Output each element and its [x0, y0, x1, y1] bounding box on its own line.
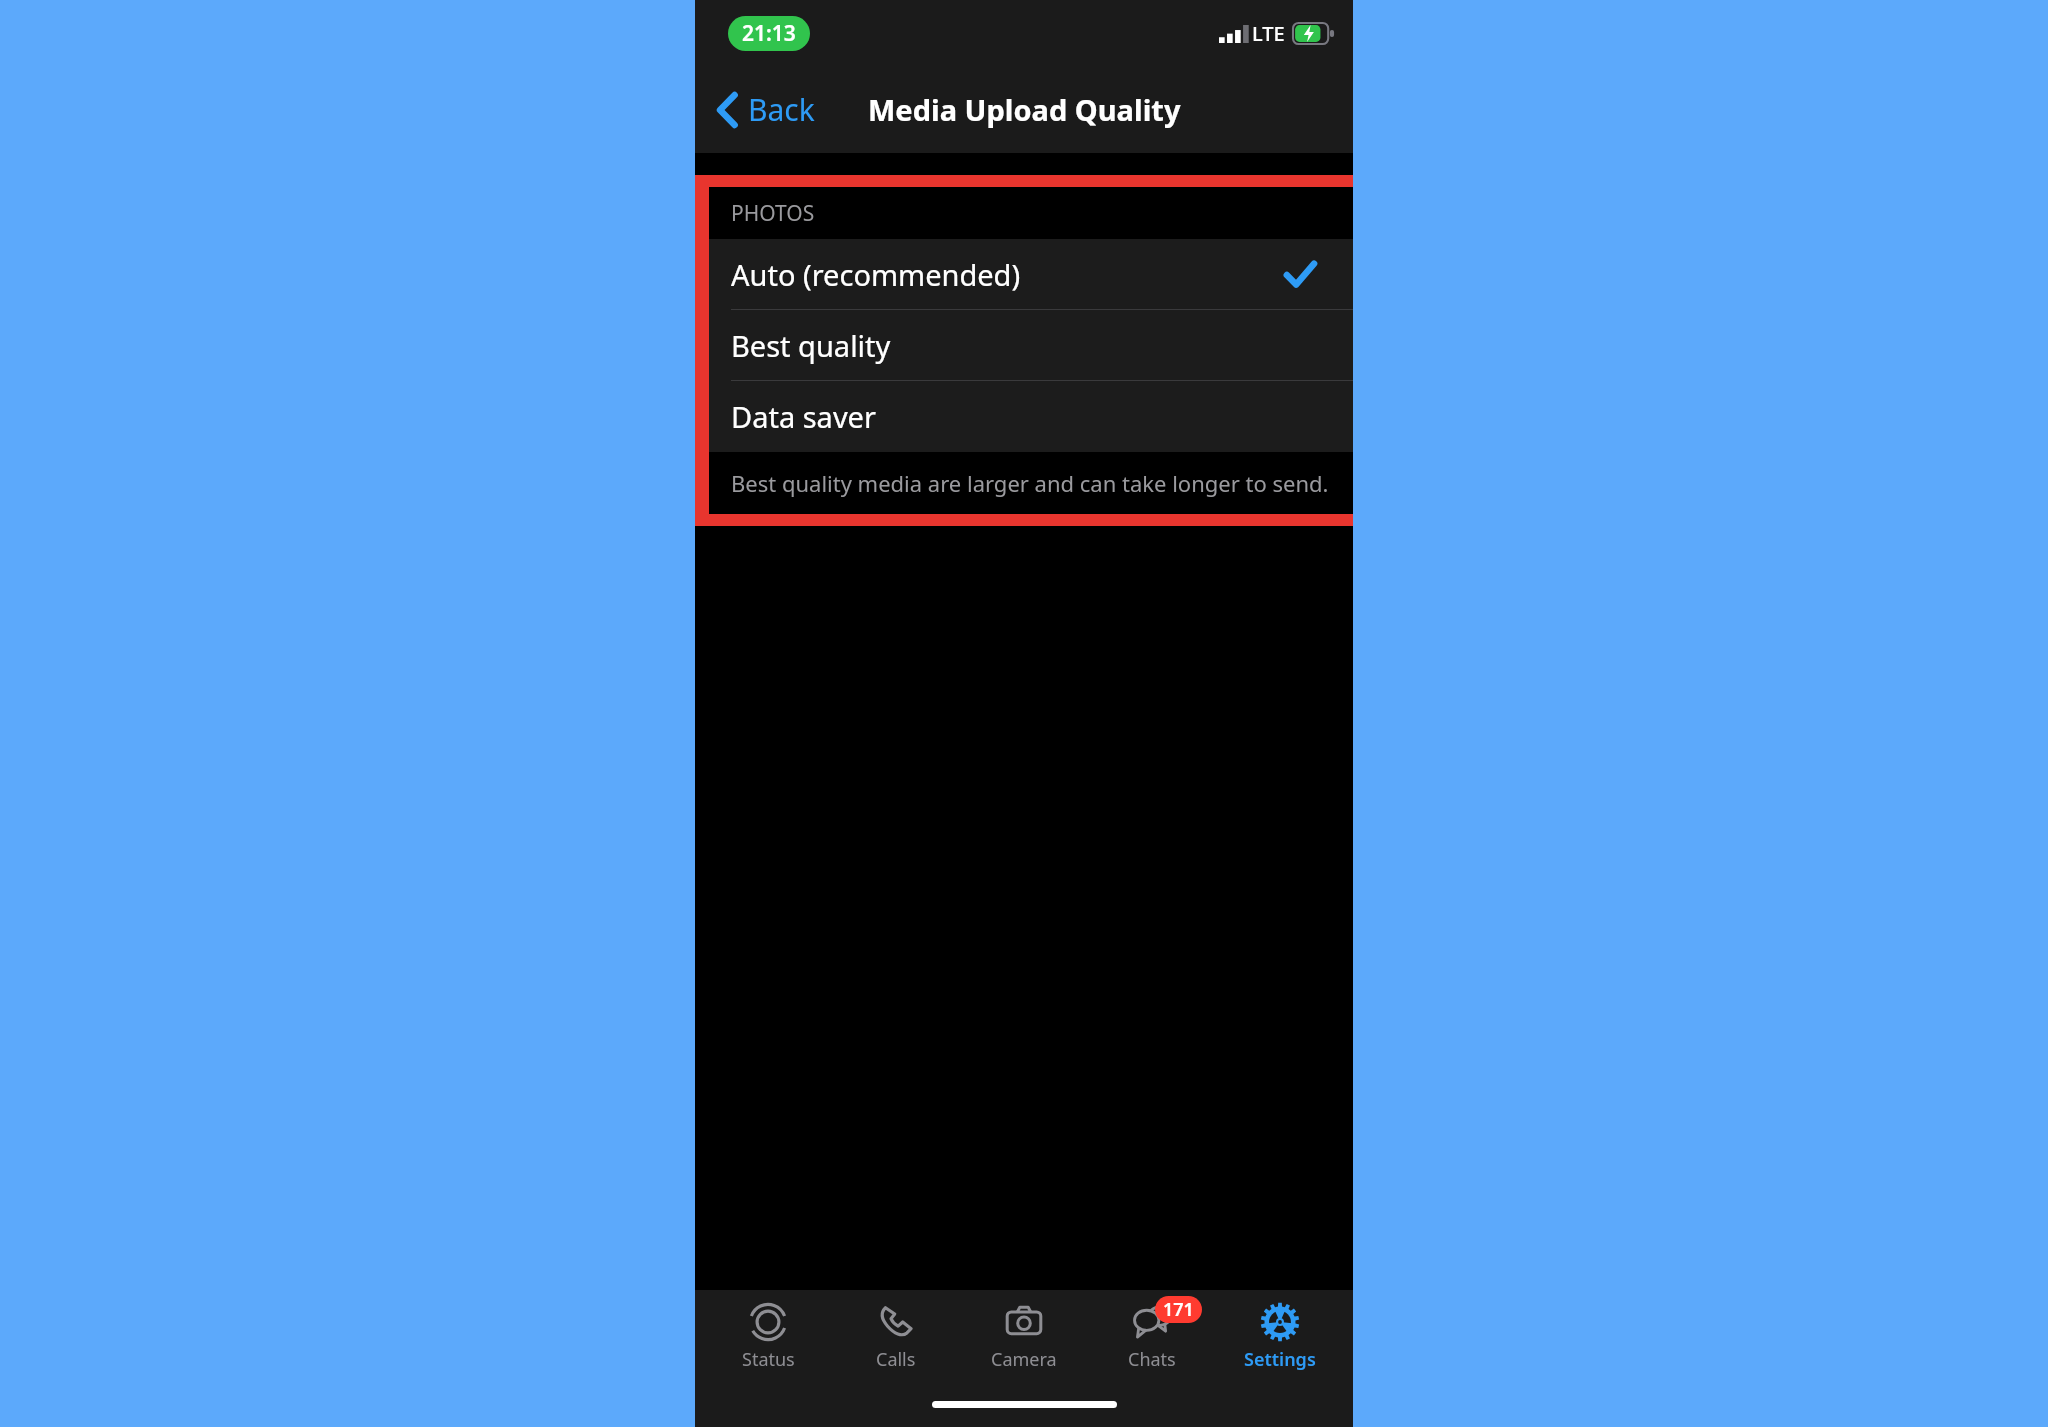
button[interactable]: Calls — [841, 1290, 951, 1382]
staticText: Back — [748, 89, 815, 130]
staticText: Media Upload Quality — [868, 90, 1181, 129]
staticText: 21:13 — [742, 19, 796, 48]
button[interactable]: Best quality — [709, 310, 1353, 381]
staticText: 171 — [1163, 1297, 1194, 1322]
staticText: Best quality media are larger and can ta… — [731, 468, 1329, 498]
staticText: Status — [742, 1347, 795, 1372]
button[interactable]: Auto (recommended) — [709, 239, 1353, 310]
button[interactable]: 171 — [1097, 1290, 1207, 1382]
button[interactable]: Data saver — [709, 381, 1353, 452]
staticText: Chats — [1128, 1347, 1176, 1372]
staticText: PHOTOS — [731, 199, 815, 228]
button[interactable]: Back — [695, 81, 827, 138]
staticText: Data saver — [731, 397, 876, 436]
staticText: Best quality — [731, 326, 891, 365]
button[interactable]: Status — [713, 1290, 823, 1382]
staticText: Auto (recommended) — [731, 255, 1021, 294]
button[interactable]: Settings — [1225, 1290, 1335, 1382]
button[interactable]: Camera — [969, 1290, 1079, 1382]
staticText: Settings — [1244, 1347, 1316, 1372]
staticText: Calls — [876, 1347, 916, 1372]
staticText: LTE — [1252, 20, 1285, 47]
staticText: Camera — [991, 1347, 1057, 1372]
